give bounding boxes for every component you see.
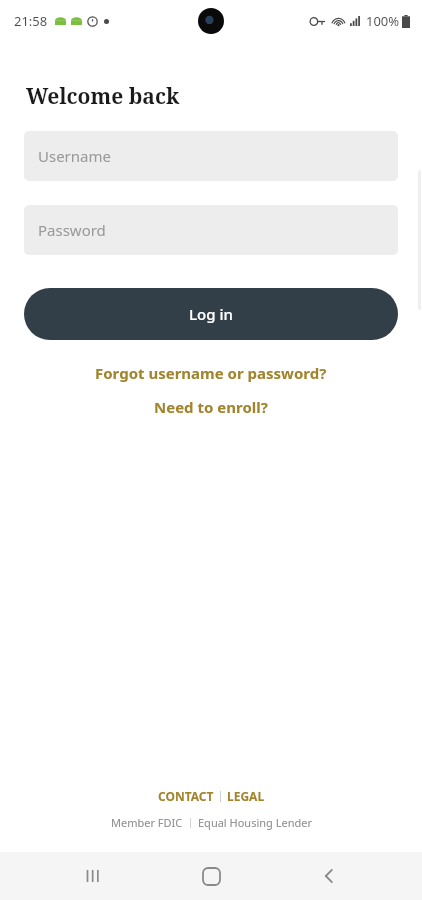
staticText: Welcome back (26, 82, 180, 111)
button[interactable]: Password (24, 205, 398, 255)
staticText: Password (38, 220, 106, 240)
staticText: Username (38, 146, 111, 166)
button[interactable]: Log in (24, 288, 398, 340)
button[interactable]: Forgot username or password? (0, 360, 422, 386)
staticText: Forgot username or password? (95, 363, 327, 383)
button[interactable]: Home (187, 852, 235, 900)
button[interactable]: Need to enroll? (0, 394, 422, 420)
staticText: 100% (366, 12, 400, 30)
button[interactable]: Back (305, 852, 353, 900)
staticText: Member FDIC (111, 815, 183, 830)
staticText: Equal Housing Lender (198, 815, 312, 830)
staticText: LEGAL (227, 788, 265, 804)
staticText: Need to enroll? (154, 397, 268, 417)
staticText: 21:58 (14, 12, 48, 30)
button[interactable]: CONTACT (152, 786, 220, 806)
button[interactable]: Username (24, 131, 398, 181)
button[interactable]: LEGAL (221, 786, 271, 806)
staticText: CONTACT (158, 788, 214, 804)
staticText: Log in (189, 304, 233, 324)
button[interactable]: Recents (70, 852, 118, 900)
